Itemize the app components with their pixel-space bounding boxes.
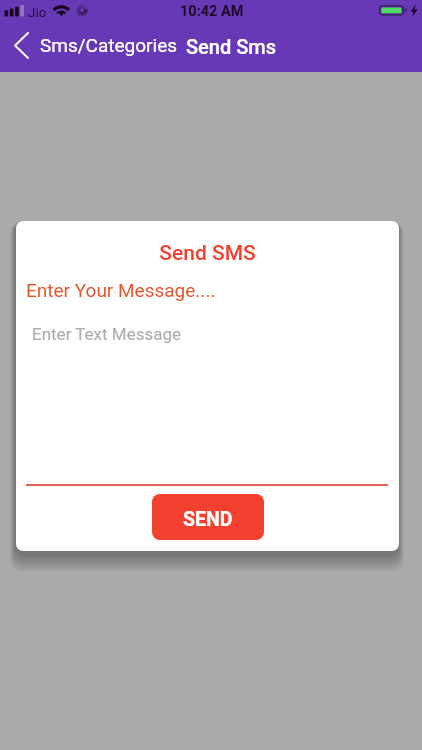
- staticText: SEND: [183, 508, 233, 531]
- button[interactable]: SEND: [152, 494, 264, 540]
- staticText: Enter Your Message....: [26, 279, 216, 301]
- staticText: Send Sms: [186, 35, 277, 58]
- button[interactable]: Back: [3, 23, 39, 67]
- staticText: Enter Text Message: [32, 324, 182, 344]
- staticText: Send SMS: [16, 241, 399, 266]
- staticText: 10:42 AM: [180, 3, 244, 20]
- staticText: Sms/Categories: [40, 34, 178, 56]
- staticText: Jio: [28, 4, 47, 20]
